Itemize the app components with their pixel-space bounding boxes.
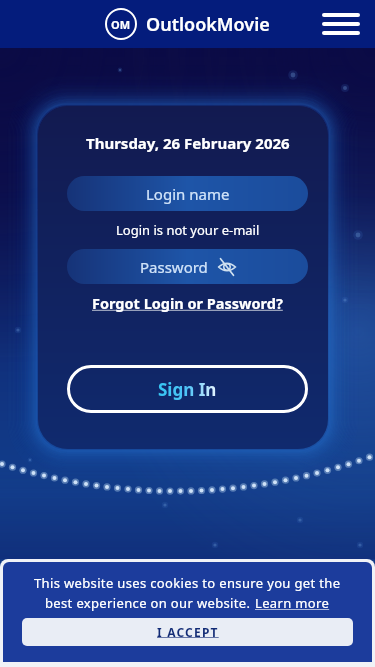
button[interactable]: OM [105, 8, 137, 40]
staticText: I ACCEPT [157, 624, 219, 640]
staticText: Login name [146, 184, 230, 204]
staticText: Password [140, 257, 208, 277]
button[interactable]: Learn more [255, 594, 330, 612]
staticText: Sign In [158, 378, 217, 401]
staticText: This website uses cookies to ensure you … [34, 574, 341, 592]
staticText: OM [111, 17, 131, 32]
button[interactable]: Password [67, 249, 308, 284]
staticText: best experience on our website. [45, 594, 255, 612]
button[interactable]: I ACCEPT [22, 618, 353, 646]
button[interactable] [322, 13, 360, 35]
button[interactable]: Sign In [67, 365, 308, 413]
staticText: Login is not your e-mail [116, 221, 260, 239]
staticText: Thursday, 26 February 2026 [86, 133, 290, 153]
staticText: OutlookMovie [146, 12, 270, 37]
button[interactable]: Login name [67, 176, 308, 211]
button[interactable]: Forgot Login or Password? [92, 293, 283, 313]
